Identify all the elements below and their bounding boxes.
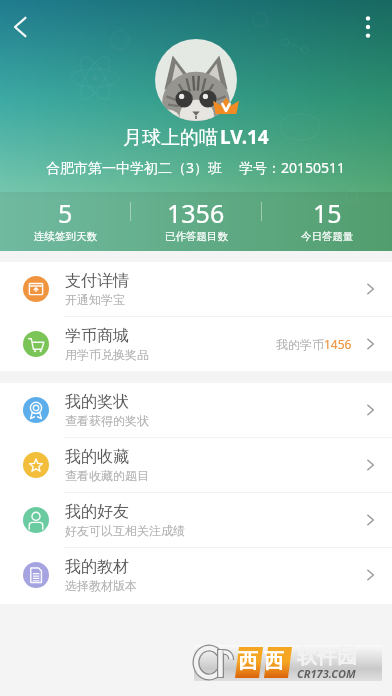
- button[interactable]: More options: [346, 5, 390, 49]
- button[interactable]: 我的好友: [0, 493, 392, 547]
- staticText: 月球上的喵: [123, 126, 218, 150]
- staticText: 今日答题量: [301, 230, 354, 243]
- staticText: 软件园: [297, 644, 357, 669]
- button[interactable]: 支付详情: [0, 262, 392, 316]
- staticText: 学号：20150511: [239, 158, 346, 177]
- staticText: 西: [238, 649, 258, 674]
- staticText: CR173.COM: [297, 666, 356, 681]
- staticText: 15: [313, 196, 342, 230]
- staticText: 我的教材: [65, 557, 129, 577]
- staticText: 1456: [324, 336, 352, 352]
- button[interactable]: Back: [0, 5, 43, 49]
- staticText: 好友可以互相关注成绩: [65, 523, 185, 538]
- staticText: 选择教材版本: [65, 578, 137, 593]
- staticText: LV.14: [220, 124, 269, 150]
- button[interactable]: 我的教材: [0, 548, 392, 602]
- staticText: 已作答题目数: [165, 230, 228, 243]
- staticText: 我的奖状: [65, 392, 129, 412]
- button[interactable]: 学币商城: [0, 317, 392, 371]
- staticText: 1356: [167, 196, 225, 230]
- staticText: 学币商城: [65, 326, 129, 346]
- button[interactable]: 我的奖状: [0, 383, 392, 437]
- staticText: 查看获得的奖状: [65, 413, 149, 428]
- staticText: 西: [264, 649, 284, 674]
- staticText: 查看收藏的题目: [65, 468, 149, 483]
- staticText: 5: [58, 196, 73, 230]
- staticText: 合肥市第一中学初二（3）班: [46, 158, 223, 177]
- staticText: 我的收藏: [65, 447, 129, 467]
- staticText: 用学币兑换奖品: [65, 347, 149, 362]
- button[interactable]: 我的收藏: [0, 438, 392, 492]
- staticText: 连续签到天数: [34, 230, 97, 243]
- staticText: 我的好友: [65, 502, 129, 522]
- staticText: 我的学币: [276, 337, 324, 352]
- staticText: 支付详情: [65, 271, 129, 291]
- staticText: 开通知学宝: [65, 292, 125, 307]
